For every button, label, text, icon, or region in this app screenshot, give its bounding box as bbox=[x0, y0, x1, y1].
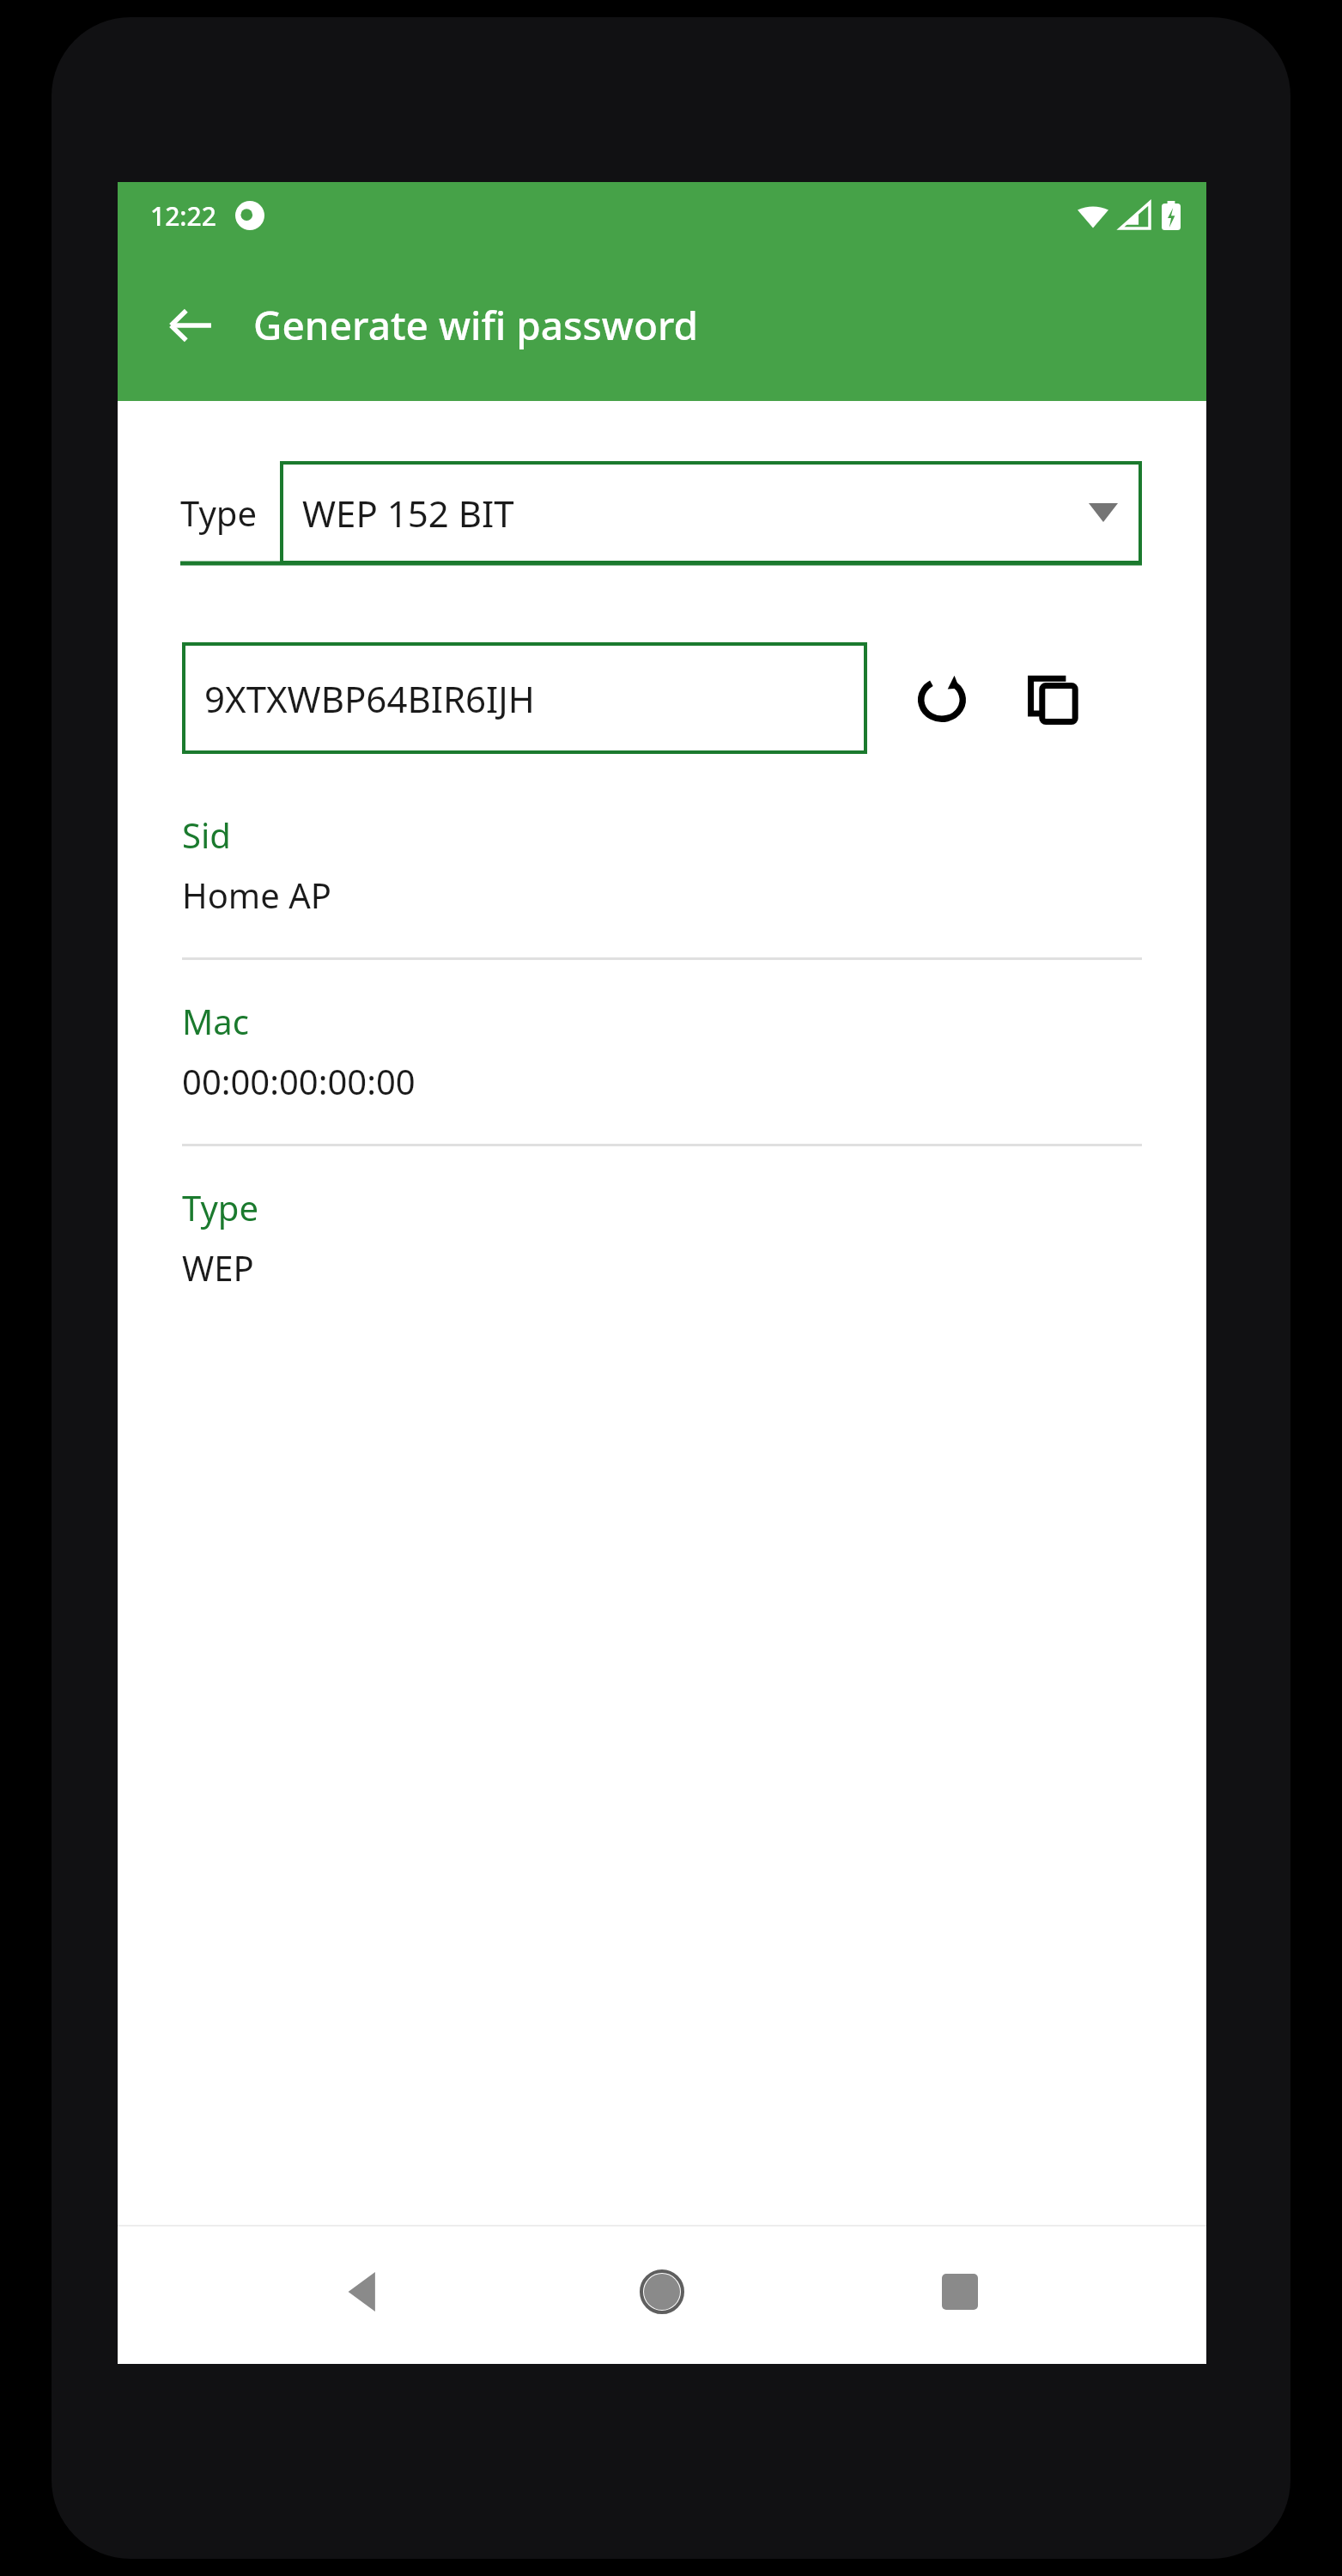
button[interactable]: Copy password bbox=[1010, 654, 1097, 742]
button[interactable]: Type bbox=[118, 1184, 1206, 1330]
staticText: Home AP bbox=[182, 872, 331, 918]
button[interactable]: 9XTXWBP64BIR6IJH bbox=[182, 642, 867, 754]
button[interactable]: Home bbox=[610, 2240, 714, 2343]
staticText: 12:22 bbox=[150, 198, 216, 234]
staticText: WEP bbox=[182, 1244, 254, 1291]
button[interactable]: Mac bbox=[118, 998, 1206, 1144]
button[interactable]: Sid bbox=[118, 811, 1206, 957]
staticText: 9XTXWBP64BIR6IJH bbox=[204, 674, 535, 723]
button[interactable]: WEP 152 BIT bbox=[280, 461, 1142, 564]
staticText: Mac bbox=[182, 998, 249, 1044]
button[interactable]: Regenerate password bbox=[898, 654, 986, 742]
button[interactable]: Recent apps bbox=[908, 2240, 1011, 2343]
button[interactable]: Back bbox=[152, 287, 229, 364]
staticText: Type bbox=[180, 489, 257, 536]
button[interactable]: Back bbox=[313, 2240, 416, 2343]
staticText: 00:00:00:00:00 bbox=[182, 1058, 416, 1104]
staticText: WEP 152 BIT bbox=[302, 489, 514, 538]
staticText: Generate wifi password bbox=[253, 298, 699, 352]
staticText: Type bbox=[182, 1184, 258, 1230]
staticText: Sid bbox=[182, 811, 231, 858]
